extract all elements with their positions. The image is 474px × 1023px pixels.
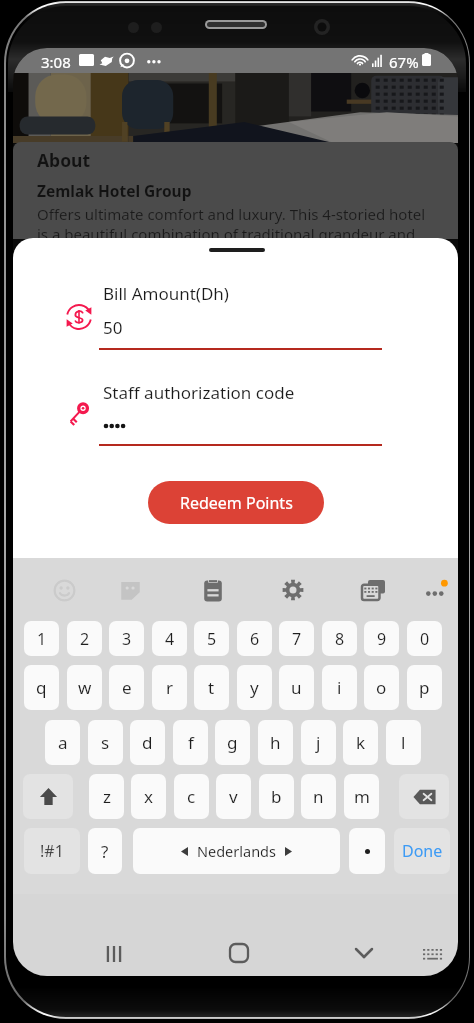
staticText: Redeem Points [180, 492, 293, 514]
button[interactable]: More options [419, 573, 453, 607]
staticText: p [419, 676, 430, 699]
button[interactable]: b [259, 774, 294, 819]
button[interactable] [349, 828, 385, 874]
staticText: g [227, 731, 238, 754]
staticText: Done [402, 840, 443, 862]
staticText: s [101, 731, 110, 754]
staticText: ? [101, 840, 109, 863]
button[interactable]: 1 [24, 621, 59, 656]
button[interactable]: f [173, 720, 208, 765]
staticText: l [401, 731, 406, 754]
staticText: !#1 [40, 840, 64, 862]
button[interactable]: v [216, 774, 251, 819]
button[interactable]: n [301, 774, 336, 819]
button[interactable]: 5 [194, 621, 229, 656]
staticText: Zemlak Hotel Group [37, 180, 192, 201]
staticText: k [356, 731, 366, 754]
button[interactable]: Recents [90, 930, 138, 976]
staticText: 4 [165, 628, 175, 650]
staticText: Nederlands [197, 841, 276, 861]
button[interactable]: u [279, 665, 314, 710]
button[interactable]: 4 [152, 621, 187, 656]
button[interactable]: 2 [67, 621, 102, 656]
button[interactable]: g [215, 720, 250, 765]
button[interactable]: 9 [364, 621, 399, 656]
staticText: o [376, 676, 387, 699]
staticText: i [337, 676, 342, 699]
button[interactable]: j [301, 720, 336, 765]
button[interactable]: h [258, 720, 293, 765]
button[interactable]: Home [215, 929, 263, 976]
staticText: t [208, 676, 215, 699]
button[interactable]: !#1 [24, 828, 80, 874]
button[interactable]: 0 [407, 621, 442, 656]
staticText: e [122, 676, 132, 699]
button[interactable]: 3 [109, 621, 144, 656]
button[interactable]: Shift [23, 774, 73, 819]
button[interactable]: p [407, 665, 442, 710]
staticText: 7 [292, 628, 302, 650]
staticText: Offers ultimate comfort and luxury. This… [37, 204, 426, 239]
button[interactable]: y [237, 665, 272, 710]
button[interactable]: Hide keyboard [408, 930, 456, 976]
button[interactable]: k [343, 720, 378, 765]
staticText: v [229, 785, 238, 808]
staticText: 3 [122, 628, 132, 650]
button[interactable]: 6 [237, 621, 272, 656]
button[interactable]: o [364, 665, 399, 710]
button[interactable]: 8 [322, 621, 357, 656]
staticText: j [316, 731, 321, 754]
button[interactable]: Redeem Points [148, 481, 324, 524]
button[interactable]: q [24, 665, 59, 710]
staticText: u [291, 676, 302, 699]
staticText: 3:08 [41, 52, 71, 72]
staticText: d [142, 731, 153, 754]
button[interactable]: 7 [279, 621, 314, 656]
button[interactable]: Clipboard [196, 573, 230, 607]
staticText: z [103, 785, 111, 808]
button[interactable]: Back [340, 929, 388, 976]
staticText: h [270, 731, 281, 754]
button[interactable]: c [174, 774, 209, 819]
button[interactable]: l [386, 720, 421, 765]
button[interactable]: x [131, 774, 166, 819]
staticText: Bill Amount(Dh) [103, 282, 229, 305]
staticText: m [354, 785, 370, 808]
button[interactable]: t [194, 665, 229, 710]
staticText: y [250, 676, 259, 699]
staticText: q [36, 676, 47, 699]
staticText: b [271, 785, 282, 808]
button[interactable]: w [67, 665, 102, 710]
staticText: r [166, 676, 174, 699]
button[interactable]: Emoji [47, 573, 81, 607]
staticText: 8 [335, 628, 345, 650]
button[interactable]: z [89, 774, 124, 819]
staticText: 50 [103, 316, 123, 339]
staticText: About [37, 148, 91, 172]
button[interactable]: Keyboard modes [356, 573, 390, 607]
button[interactable]: a [45, 720, 80, 765]
button[interactable]: m [344, 774, 379, 819]
staticText: n [313, 785, 324, 808]
staticText: 9 [377, 628, 387, 650]
button[interactable]: d [130, 720, 165, 765]
staticText: w [78, 676, 92, 699]
button[interactable]: Stickers [113, 573, 147, 607]
staticText: 0 [420, 628, 430, 650]
button[interactable]: ? [88, 828, 122, 874]
staticText: 1 [37, 628, 47, 650]
button[interactable]: Backspace [399, 774, 449, 819]
staticText: x [144, 785, 153, 808]
button[interactable]: s [88, 720, 123, 765]
button[interactable]: e [109, 665, 144, 710]
button[interactable]: Done [394, 828, 450, 874]
button[interactable]: Space, Nederlands [133, 828, 340, 874]
staticText: 2 [80, 628, 90, 650]
button[interactable]: Settings [276, 573, 310, 607]
button[interactable]: i [322, 665, 357, 710]
button[interactable]: r [152, 665, 187, 710]
staticText: f [188, 731, 194, 754]
staticText: 6 [250, 628, 260, 650]
staticText: 67% [389, 52, 419, 72]
staticText: a [58, 731, 68, 754]
